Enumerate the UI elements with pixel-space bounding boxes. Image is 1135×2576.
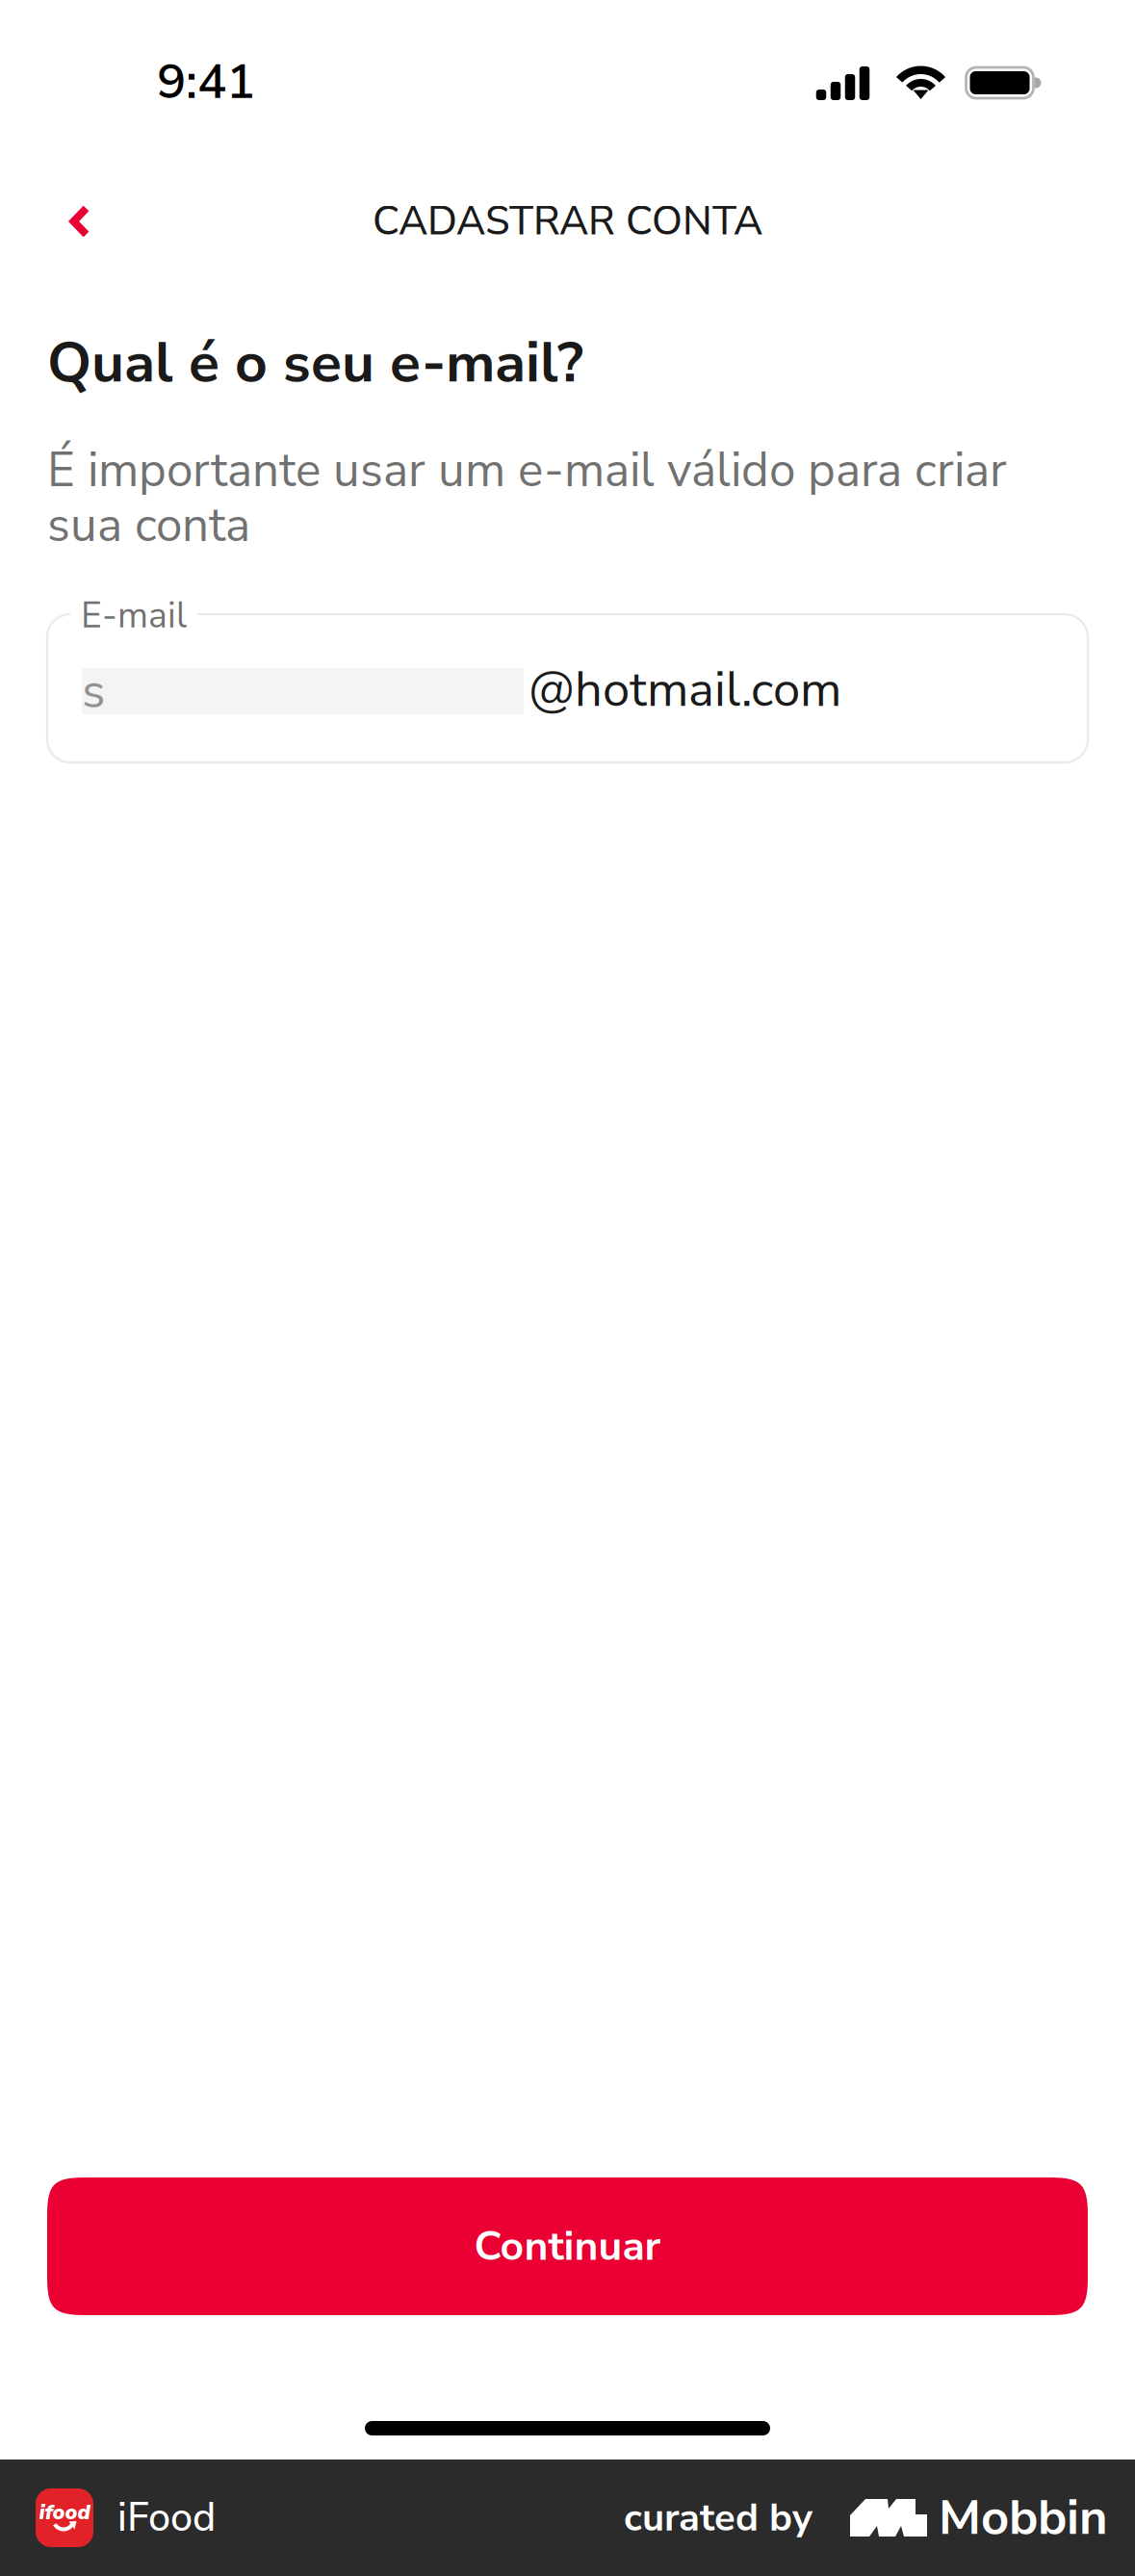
staticText: E-mail [81,591,187,640]
staticText: Continuar [474,2218,661,2274]
staticText: CADASTRAR CONTA [373,194,762,249]
staticText: sua conta [47,493,250,558]
staticText: 9:41 [157,49,255,115]
staticText: @hotmail.com [529,657,841,723]
staticText: curated by [624,2491,813,2544]
staticText: s [82,658,105,724]
button[interactable]: Back [35,184,125,259]
staticText: iFood [117,2491,216,2545]
staticText: Qual é o seu e-mail? [47,324,583,401]
staticText: ifood [39,2499,90,2527]
button[interactable]: Continuar [47,2177,1088,2315]
staticText: É importante usar um e-mail válido para … [47,438,1007,503]
staticText: Mobbin [939,2484,1108,2551]
